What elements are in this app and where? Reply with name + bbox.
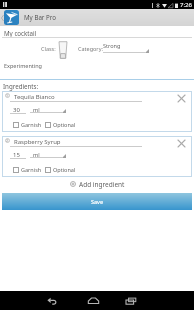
staticText: Garnish <box>21 121 42 128</box>
button[interactable]: Garnish <box>13 166 42 173</box>
staticText: Optional <box>53 166 76 173</box>
staticText: Class: <box>41 45 56 52</box>
button[interactable]: My Bar Pro <box>4 10 19 25</box>
staticText: Optional <box>53 121 76 128</box>
staticText: 7:26 <box>180 1 192 9</box>
button[interactable]: 1 <box>2 91 192 132</box>
staticText: Strong <box>103 42 121 49</box>
button[interactable]: Choose glass <box>58 41 68 59</box>
button[interactable]: Add ingredient <box>0 179 194 189</box>
button[interactable]: Recent apps <box>116 291 146 310</box>
button[interactable]: Remove ingredient <box>173 135 189 151</box>
button[interactable]: Save <box>2 193 192 210</box>
staticText: Tequila Bianco <box>14 93 55 101</box>
staticText: My Bar Pro <box>24 13 56 21</box>
staticText: 1 <box>6 93 9 98</box>
button[interactable]: Garnish <box>13 121 42 128</box>
button[interactable]: Optional <box>45 166 76 173</box>
staticText: Raspberry Syrup <box>14 138 61 146</box>
button[interactable]: 2 <box>2 136 192 177</box>
button[interactable]: Home <box>78 291 108 310</box>
staticText: Category: <box>78 45 103 52</box>
staticText: My cocktail <box>4 29 37 37</box>
staticText: Save <box>91 198 104 205</box>
staticText: Experimenting <box>4 62 42 69</box>
staticText: 30 <box>13 106 20 114</box>
staticText: Ingredients: <box>3 82 39 90</box>
staticText: 2 <box>6 138 9 143</box>
staticText: ml <box>33 151 40 158</box>
button[interactable]: Remove ingredient <box>173 90 189 106</box>
button[interactable]: Optional <box>45 121 76 128</box>
button[interactable]: Back <box>37 291 67 310</box>
staticText: ml <box>33 106 40 113</box>
staticText: Add ingredient <box>79 180 125 189</box>
staticText: Garnish <box>21 166 42 173</box>
button[interactable]: Category <box>103 42 149 53</box>
staticText: 15 <box>13 151 20 159</box>
